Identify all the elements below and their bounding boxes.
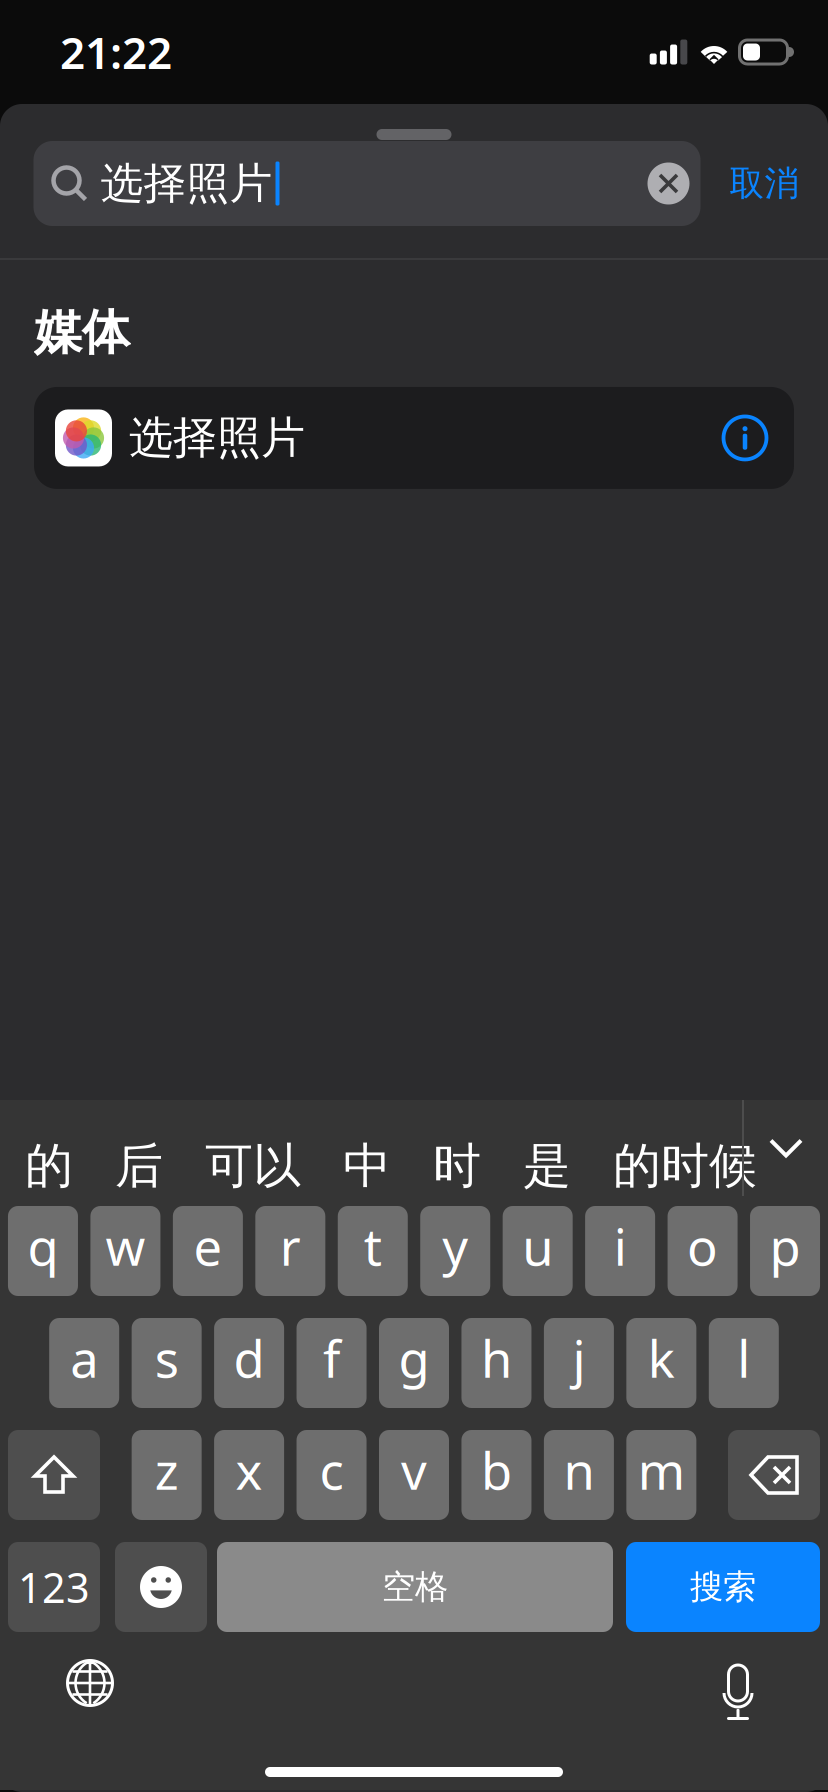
staticText: 选择照片	[129, 411, 305, 465]
button[interactable]: Shift	[8, 1430, 100, 1520]
staticText: h	[481, 1324, 512, 1392]
staticText: 可以	[205, 1136, 301, 1195]
button[interactable]: f	[297, 1318, 367, 1408]
button[interactable]: i	[585, 1206, 655, 1296]
button[interactable]: y	[420, 1206, 490, 1296]
button[interactable]: 的	[25, 1118, 73, 1214]
staticText: n	[563, 1436, 594, 1504]
staticText: 取消	[729, 162, 799, 205]
staticText: t	[364, 1212, 382, 1280]
button[interactable]: v	[379, 1430, 449, 1520]
staticText: 空格	[382, 1566, 448, 1607]
button[interactable]: a	[49, 1318, 119, 1408]
button[interactable]: 取消	[700, 141, 828, 226]
button[interactable]: 中	[343, 1118, 391, 1214]
button[interactable]: c	[296, 1430, 366, 1520]
button[interactable]: d	[214, 1318, 284, 1408]
staticText: l	[737, 1324, 750, 1392]
button[interactable]: x	[214, 1430, 284, 1520]
button[interactable]: o	[668, 1206, 738, 1296]
staticText: 是	[523, 1136, 571, 1195]
button[interactable]: r	[255, 1206, 325, 1296]
button[interactable]: e	[173, 1206, 243, 1296]
staticText: 的时候	[613, 1136, 757, 1195]
staticText: w	[105, 1212, 145, 1280]
button[interactable]: z	[132, 1430, 202, 1520]
button[interactable]: Search	[626, 1542, 820, 1632]
staticText: y	[442, 1212, 468, 1280]
button[interactable]: q	[8, 1206, 78, 1296]
staticText: m	[638, 1436, 685, 1504]
staticText: r	[280, 1212, 301, 1280]
button[interactable]: w	[90, 1206, 160, 1296]
staticText: c	[319, 1436, 343, 1504]
staticText: e	[193, 1212, 222, 1280]
staticText: 选择照片	[100, 157, 272, 210]
staticText: d	[234, 1324, 265, 1392]
staticText: z	[155, 1436, 179, 1504]
button[interactable]: Dictation	[693, 1644, 783, 1722]
staticText: k	[648, 1324, 675, 1392]
staticText: g	[398, 1324, 429, 1392]
staticText: 时	[433, 1136, 481, 1195]
button[interactable]: Space	[217, 1542, 613, 1632]
button[interactable]: l	[709, 1318, 779, 1408]
button[interactable]: b	[461, 1430, 531, 1520]
button[interactable]: 可以	[205, 1118, 301, 1214]
staticText: 搜索	[690, 1566, 756, 1607]
staticText: u	[522, 1212, 553, 1280]
button[interactable]: k	[626, 1318, 696, 1408]
button[interactable]: Emoji	[115, 1542, 207, 1632]
staticText: f	[323, 1324, 340, 1392]
button[interactable]: t	[338, 1206, 408, 1296]
staticText: b	[481, 1436, 512, 1504]
button[interactable]: j	[544, 1318, 614, 1408]
button[interactable]: n	[544, 1430, 614, 1520]
button[interactable]: p	[750, 1206, 820, 1296]
staticText: q	[27, 1212, 58, 1280]
button[interactable]: 后	[115, 1118, 163, 1214]
button[interactable]: Hide candidates	[744, 1100, 828, 1196]
staticText: 中	[343, 1136, 391, 1195]
button[interactable]: 的时候	[613, 1118, 757, 1214]
staticText: 媒体	[34, 303, 130, 362]
button[interactable]: h	[461, 1318, 531, 1408]
button[interactable]: u	[503, 1206, 573, 1296]
button[interactable]: 是	[523, 1118, 571, 1214]
button[interactable]: g	[379, 1318, 449, 1408]
button[interactable]: Delete	[728, 1430, 820, 1520]
button[interactable]: Numbers	[8, 1542, 100, 1632]
button[interactable]: 选择照片	[34, 387, 794, 489]
staticText: v	[401, 1436, 427, 1504]
staticText: 后	[115, 1136, 163, 1195]
staticText: a	[70, 1324, 98, 1392]
button[interactable]: s	[132, 1318, 202, 1408]
staticText: o	[687, 1212, 718, 1280]
staticText: 的	[25, 1136, 73, 1195]
button[interactable]: 时	[433, 1118, 481, 1214]
staticText: 21:22	[60, 23, 172, 81]
staticText: j	[572, 1324, 585, 1392]
button[interactable]: Next keyboard	[45, 1644, 135, 1722]
staticText: i	[614, 1212, 627, 1280]
staticText: x	[236, 1436, 263, 1504]
button[interactable]: m	[626, 1430, 696, 1520]
staticText: p	[769, 1212, 800, 1280]
staticText: s	[155, 1324, 179, 1392]
staticText: 123	[18, 1560, 90, 1614]
